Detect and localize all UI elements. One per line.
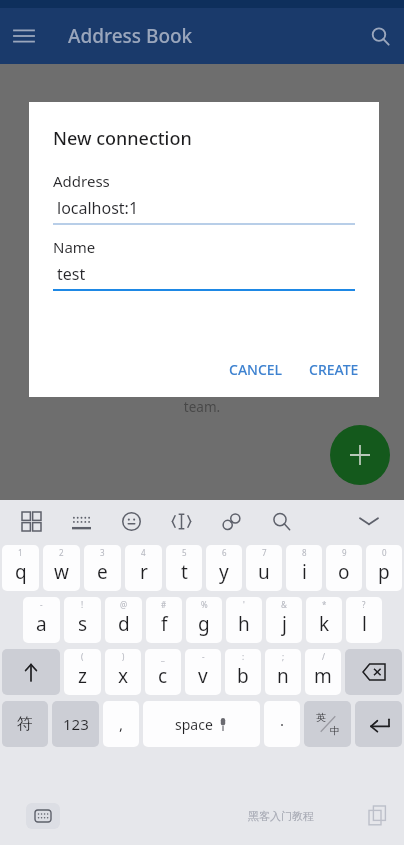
button[interactable]: Text edit bbox=[166, 506, 196, 536]
button[interactable]: CREATE bbox=[299, 350, 369, 389]
button[interactable]: Shift bbox=[2, 649, 60, 695]
staticText: h bbox=[238, 611, 250, 637]
button[interactable]: & bbox=[266, 597, 302, 643]
button[interactable]: / bbox=[305, 649, 341, 695]
staticText: 中 bbox=[330, 724, 340, 737]
button[interactable]: 6 bbox=[206, 545, 242, 591]
staticText: 5 bbox=[182, 547, 187, 558]
button[interactable]: 123 bbox=[52, 701, 99, 747]
staticText: c bbox=[158, 663, 168, 689]
button[interactable]: Clipboard bbox=[16, 506, 46, 536]
button[interactable]: - bbox=[23, 597, 60, 643]
button[interactable]: 9 bbox=[326, 545, 362, 591]
staticText: test bbox=[57, 263, 86, 285]
button[interactable]: CANCEL bbox=[219, 350, 293, 389]
staticText: ) bbox=[122, 651, 125, 662]
button[interactable]: 5 bbox=[166, 545, 202, 591]
staticText: n bbox=[277, 663, 289, 689]
button[interactable]: Open navigation drawer bbox=[0, 12, 48, 60]
staticText: New connection bbox=[53, 126, 192, 151]
staticText: localhost:1 bbox=[57, 197, 139, 219]
button[interactable]: : bbox=[225, 649, 261, 695]
staticText: Address Book bbox=[68, 23, 193, 49]
staticText: l bbox=[362, 611, 367, 637]
staticText: a bbox=[36, 611, 47, 637]
button[interactable]: 2 bbox=[43, 545, 80, 591]
staticText: u bbox=[258, 559, 270, 585]
button[interactable]: ' bbox=[226, 597, 262, 643]
staticText: & bbox=[281, 599, 287, 610]
staticText: b bbox=[237, 663, 249, 689]
staticText: 7 bbox=[262, 547, 267, 558]
staticText: # bbox=[161, 599, 167, 610]
button[interactable]: ) bbox=[105, 649, 141, 695]
staticText: ? bbox=[362, 599, 366, 610]
button[interactable]: Search bbox=[356, 12, 404, 60]
button[interactable]: 1 bbox=[2, 545, 39, 591]
staticText: - bbox=[202, 651, 205, 662]
button[interactable]: - bbox=[185, 649, 221, 695]
button[interactable]: Attach bbox=[216, 506, 246, 536]
staticText: Sign in instructions to share contacts w… bbox=[6, 371, 398, 389]
button[interactable]: 3 bbox=[84, 545, 121, 591]
staticText: d bbox=[118, 611, 130, 637]
button[interactable]: Search bbox=[266, 506, 296, 536]
staticText: Tap the + button to add a connection, or… bbox=[6, 320, 398, 338]
button[interactable]: Enter bbox=[355, 701, 402, 747]
staticText: @ bbox=[120, 599, 128, 610]
staticText: , bbox=[119, 714, 124, 734]
button[interactable]: 4 bbox=[125, 545, 162, 591]
button[interactable]: space bbox=[143, 701, 260, 747]
staticText: 1 bbox=[18, 547, 23, 558]
staticText: o bbox=[338, 559, 350, 585]
staticText: t bbox=[181, 559, 188, 585]
staticText: 8 bbox=[302, 547, 307, 558]
button[interactable]: test bbox=[53, 263, 355, 291]
button[interactable]: ? bbox=[346, 597, 382, 643]
staticText: ( bbox=[81, 651, 84, 662]
staticText: / bbox=[322, 651, 325, 662]
staticText: g bbox=[198, 611, 210, 637]
staticText: : bbox=[242, 651, 245, 662]
staticText: 9 bbox=[342, 547, 347, 558]
staticText: q bbox=[15, 559, 27, 585]
button[interactable]: 符 bbox=[2, 701, 48, 747]
staticText: e bbox=[97, 559, 108, 585]
button[interactable]: Switch keyboard bbox=[26, 803, 60, 829]
staticText: * bbox=[322, 599, 327, 610]
button[interactable]: Hide keyboard bbox=[354, 506, 384, 536]
button[interactable]: Add connection bbox=[330, 425, 390, 485]
staticText: x bbox=[118, 663, 129, 689]
staticText: 4 bbox=[141, 547, 146, 558]
staticText: ; bbox=[282, 651, 285, 662]
button[interactable]: Keyboard layout bbox=[66, 506, 96, 536]
button[interactable]: Backspace bbox=[345, 649, 402, 695]
button[interactable]: 8 bbox=[286, 545, 322, 591]
staticText: % bbox=[201, 599, 208, 610]
button[interactable]: Switch language bbox=[304, 701, 351, 747]
button[interactable]: Emoji bbox=[116, 506, 146, 536]
staticText: s bbox=[78, 611, 88, 637]
button[interactable]: · bbox=[264, 701, 300, 747]
button[interactable]: # bbox=[146, 597, 182, 643]
button[interactable]: _ bbox=[145, 649, 181, 695]
staticText: 英 bbox=[316, 711, 326, 724]
staticText: i bbox=[302, 559, 307, 585]
button[interactable]: , bbox=[103, 701, 139, 747]
button[interactable]: * bbox=[306, 597, 342, 643]
button[interactable]: ( bbox=[64, 649, 101, 695]
staticText: p bbox=[378, 559, 390, 585]
staticText: CANCEL bbox=[229, 360, 283, 379]
staticText: 2 bbox=[59, 547, 64, 558]
button[interactable]: % bbox=[186, 597, 222, 643]
button[interactable]: @ bbox=[105, 597, 142, 643]
button[interactable]: 0 bbox=[366, 545, 402, 591]
button[interactable]: 7 bbox=[246, 545, 282, 591]
staticText: 6 bbox=[222, 547, 227, 558]
button[interactable]: ; bbox=[265, 649, 301, 695]
staticText: 123 bbox=[63, 714, 89, 734]
button[interactable]: ! bbox=[64, 597, 101, 643]
staticText: team. bbox=[0, 398, 404, 416]
staticText: r bbox=[140, 559, 148, 585]
button[interactable]: localhost:1 bbox=[53, 197, 355, 225]
